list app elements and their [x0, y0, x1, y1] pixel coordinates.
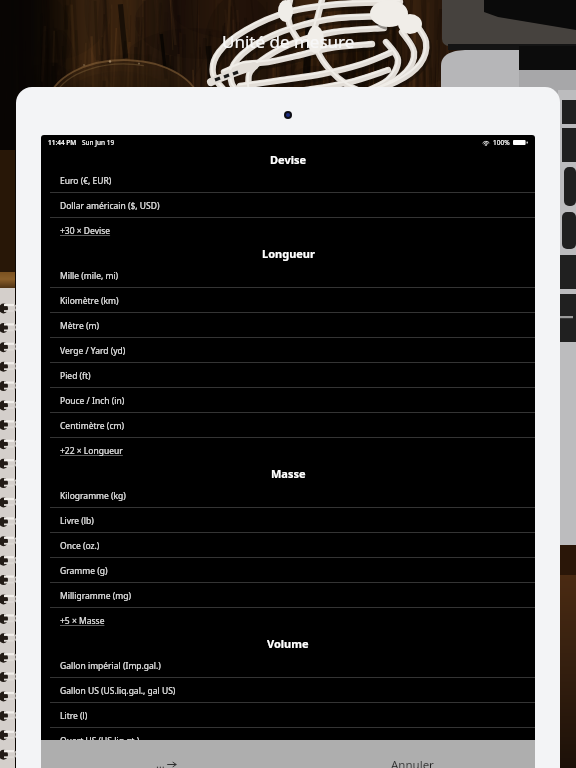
button[interactable]: Livre (lb) [41, 508, 535, 533]
staticText: Mille (mile, mi) [60, 270, 119, 282]
staticText: Gramme (g) [60, 565, 108, 577]
button[interactable]: Gallon impérial (Imp.gal.) [41, 653, 535, 678]
staticText: Unité de mesure [222, 30, 355, 53]
staticText: … [156, 756, 165, 768]
staticText: Sun Jun 19 [82, 138, 115, 147]
staticText: Once (oz.) [60, 540, 100, 552]
staticText: Litre (l) [60, 710, 88, 722]
button[interactable]: Mille (mile, mi) [41, 263, 535, 288]
staticText: Masse [271, 466, 306, 481]
button[interactable]: +5 × Masse [41, 608, 535, 633]
button[interactable]: Annuler [391, 757, 434, 768]
button[interactable]: Kilogramme (kg) [41, 483, 535, 508]
button[interactable]: Pied (ft) [41, 363, 535, 388]
button[interactable]: Euro (€, EUR) [41, 168, 535, 193]
staticText: Gallon impérial (Imp.gal.) [60, 660, 161, 672]
staticText: Pied (ft) [60, 370, 91, 382]
button[interactable]: Kilomètre (km) [41, 288, 535, 313]
button[interactable]: Mètre (m) [41, 313, 535, 338]
staticText: Milligramme (mg) [60, 590, 131, 602]
button[interactable]: Litre (l) [41, 703, 535, 728]
button[interactable]: +22 × Longueur [41, 438, 535, 463]
staticText: Mètre (m) [60, 320, 99, 332]
button[interactable]: Centimètre (cm) [41, 413, 535, 438]
staticText: Kilomètre (km) [60, 295, 119, 307]
button[interactable]: Milligramme (mg) [41, 583, 535, 608]
staticText: 100% [493, 138, 510, 147]
staticText: Quart US (US.liq.qt.) [60, 735, 140, 747]
button[interactable]: Gallon US (US.liq.gal., gal US) [41, 678, 535, 703]
button[interactable]: +30 × Devise [41, 218, 535, 243]
staticText: Verge / Yard (yd) [60, 345, 126, 357]
button[interactable]: Pouce / Inch (in) [41, 388, 535, 413]
staticText: Annuler [391, 757, 434, 768]
staticText: +30 × Devise [60, 225, 111, 237]
staticText: Gallon US (US.liq.gal., gal US) [60, 685, 176, 697]
button[interactable]: Verge / Yard (yd) [41, 338, 535, 363]
staticText: Longueur [262, 246, 315, 261]
staticText: +22 × Longueur [60, 445, 123, 457]
staticText: Devise [270, 152, 307, 167]
button[interactable]: Dollar américain ($, USD) [41, 193, 535, 218]
button[interactable]: More options [156, 756, 177, 768]
button[interactable]: Once (oz.) [41, 533, 535, 558]
staticText: Centimètre (cm) [60, 420, 124, 432]
staticText: Kilogramme (kg) [60, 490, 126, 502]
staticText: Volume [267, 636, 309, 651]
staticText: Euro (€, EUR) [60, 175, 112, 187]
staticText: Pouce / Inch (in) [60, 395, 125, 407]
button[interactable]: Quart US (US.liq.qt.) [41, 728, 535, 753]
staticText: Livre (lb) [60, 515, 94, 527]
staticText: 11:44 PM [48, 138, 77, 147]
staticText: Dollar américain ($, USD) [60, 200, 160, 212]
staticText: +5 × Masse [60, 615, 105, 627]
button[interactable]: Gramme (g) [41, 558, 535, 583]
